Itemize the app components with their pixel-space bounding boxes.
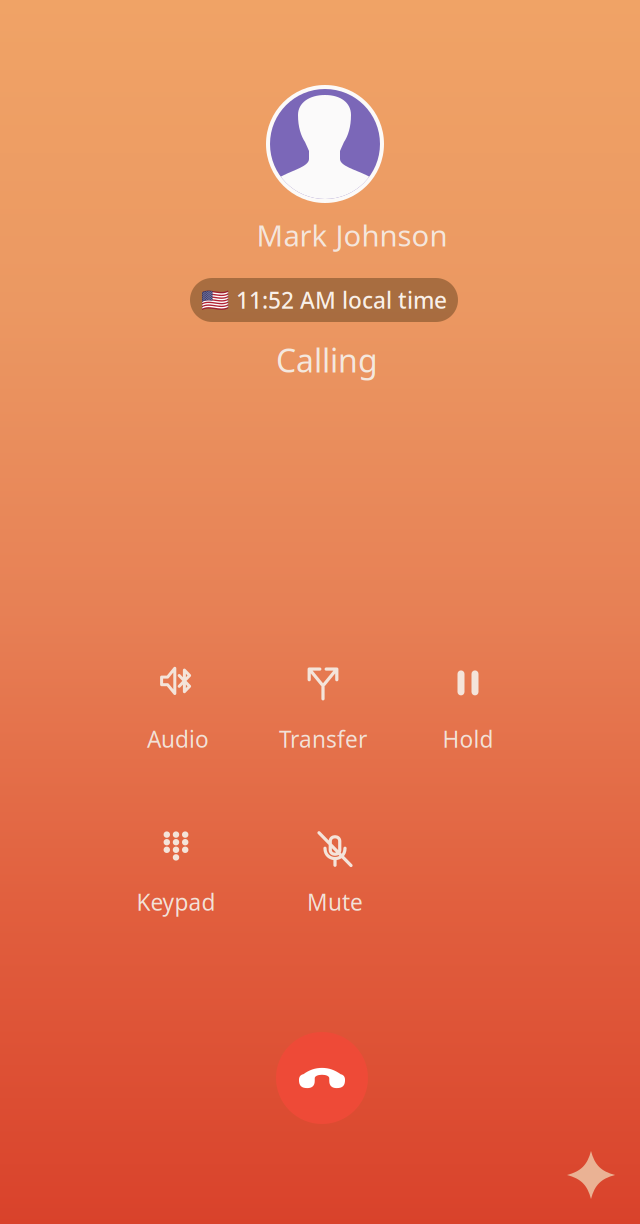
button[interactable]: Audio bbox=[105, 663, 250, 754]
staticText: Mark Johnson bbox=[256, 215, 447, 254]
staticText: 11:52 AM local time bbox=[236, 285, 447, 315]
staticText: Calling bbox=[276, 339, 378, 381]
button[interactable]: End Call bbox=[276, 1032, 368, 1124]
button[interactable]: Mute bbox=[246, 826, 423, 917]
staticText: Keypad bbox=[136, 887, 215, 917]
button[interactable]: Apple Intelligence bbox=[567, 1151, 615, 1199]
staticText: Audio bbox=[147, 724, 209, 754]
button[interactable]: Hold bbox=[395, 663, 540, 754]
staticText: Hold bbox=[442, 724, 493, 754]
staticText: Transfer bbox=[279, 724, 367, 754]
staticText: 🇺🇸 bbox=[201, 287, 229, 313]
button[interactable]: Keypad bbox=[105, 826, 246, 917]
staticText: Mute bbox=[307, 887, 363, 917]
button[interactable]: Transfer bbox=[250, 663, 395, 754]
